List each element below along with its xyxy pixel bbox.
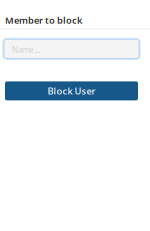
button[interactable]: Name [0, 37, 150, 60]
staticText: Member to block [5, 14, 82, 26]
staticText: Block User [47, 85, 95, 97]
staticText: Name... [12, 45, 40, 55]
button[interactable]: Block User [0, 81, 150, 100]
